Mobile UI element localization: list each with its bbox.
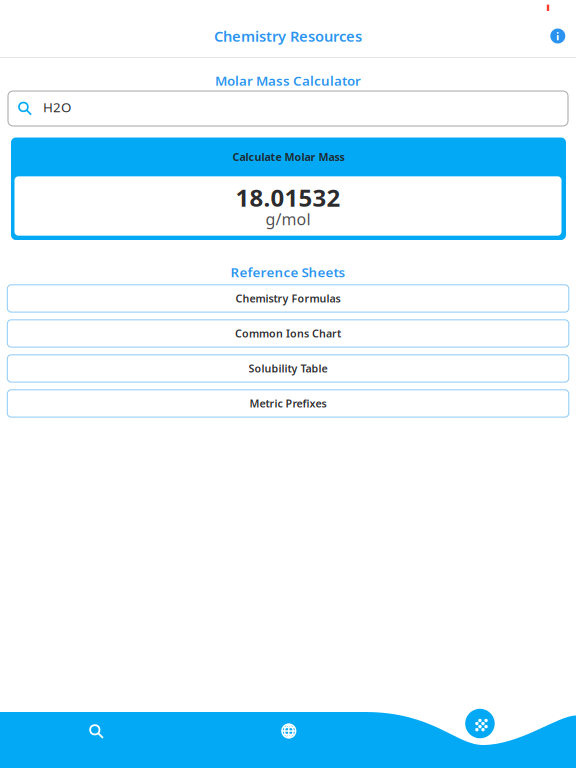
button[interactable]: About xyxy=(539,17,576,55)
staticText: 18.01532 xyxy=(235,182,340,213)
staticText: Solubility Table xyxy=(249,361,328,376)
staticText: Chemistry Resources xyxy=(214,26,362,46)
staticText: Metric Prefixes xyxy=(250,396,327,411)
button[interactable]: Solubility Table xyxy=(7,355,569,382)
button[interactable]: Molecules xyxy=(465,709,495,738)
staticText: Chemistry Formulas xyxy=(236,291,341,306)
button[interactable]: Common Ions Chart xyxy=(7,320,569,347)
button[interactable]: Periodic Table xyxy=(265,710,313,752)
staticText: H2O xyxy=(43,98,71,116)
staticText: Common Ions Chart xyxy=(235,326,341,341)
button[interactable]: Calculate Molar Mass xyxy=(11,137,566,176)
staticText: g/mol xyxy=(265,208,310,230)
button[interactable]: Chemistry Formulas xyxy=(7,285,569,312)
button[interactable]: Metric Prefixes xyxy=(7,390,569,417)
staticText: Molar Mass Calculator xyxy=(215,72,361,89)
button[interactable]: Search xyxy=(73,711,121,753)
staticText: Calculate Molar Mass xyxy=(232,150,344,164)
staticText: Reference Sheets xyxy=(230,263,345,281)
